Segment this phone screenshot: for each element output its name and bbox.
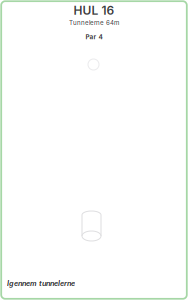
staticText: Igennem tunnelerne (7, 279, 75, 288)
button[interactable]: Hul 16, Tunnelerne 64 meter, par 4 (0, 0, 188, 300)
staticText: Tunnelerne 64m (69, 19, 119, 26)
staticText: HUL 16 (73, 3, 114, 17)
staticText: Par 4 (85, 33, 102, 41)
